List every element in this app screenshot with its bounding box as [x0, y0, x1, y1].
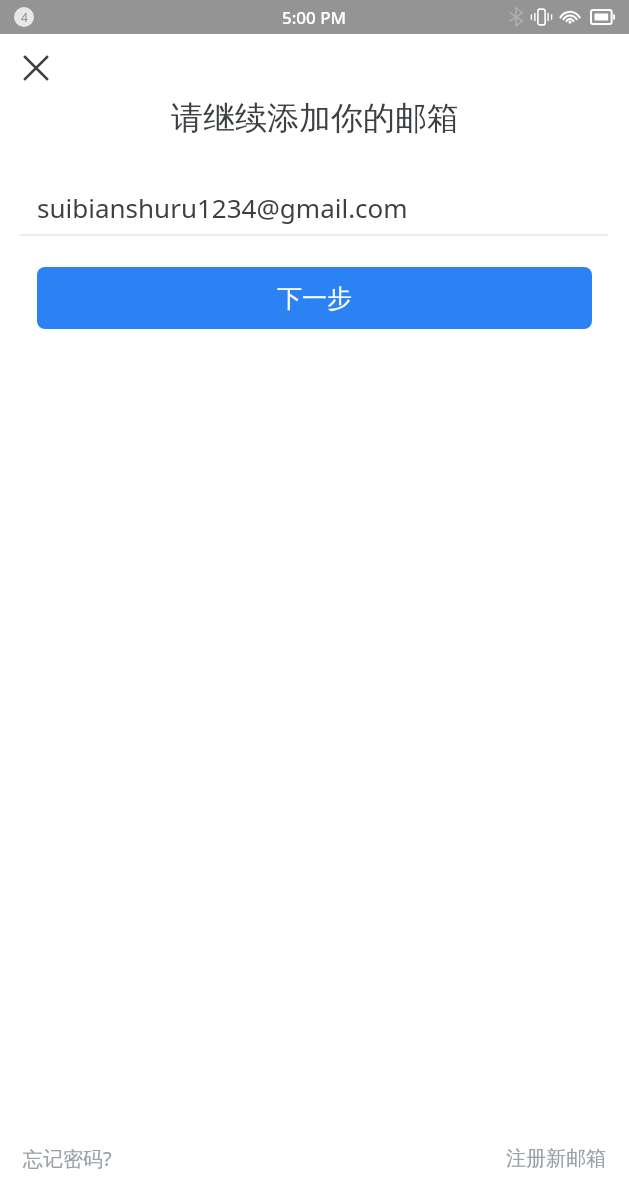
- button[interactable]: Close: [8, 40, 64, 96]
- staticText: suibianshuru1234@gmail.com: [37, 190, 408, 225]
- staticText: 5:00 PM: [282, 6, 347, 29]
- button[interactable]: 注册新邮箱: [491, 1136, 621, 1181]
- button[interactable]: 忘记密码?: [8, 1135, 127, 1182]
- staticText: 请继续添加你的邮箱: [171, 98, 459, 138]
- button[interactable]: 下一步: [37, 267, 592, 329]
- button[interactable]: suibianshuru1234@gmail.com: [0, 180, 629, 234]
- staticText: 忘记密码?: [23, 1145, 112, 1172]
- staticText: 下一步: [277, 283, 352, 314]
- staticText: 注册新邮箱: [506, 1146, 606, 1171]
- staticText: 4: [21, 9, 28, 25]
